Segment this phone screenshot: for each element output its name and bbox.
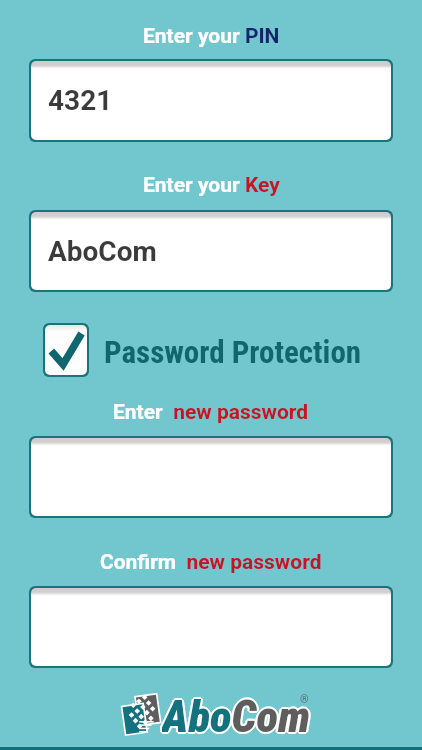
staticText: 4321 — [48, 84, 113, 117]
staticText: AboCom — [161, 691, 310, 737]
staticText: AboCom — [160, 690, 309, 736]
staticText: AboCom — [163, 690, 312, 736]
staticText: AboCom — [162, 690, 311, 736]
staticText: ® — [300, 693, 309, 706]
staticText: AboCom — [162, 691, 311, 737]
button[interactable]: Password Protection — [43, 323, 362, 377]
staticText: AboCom — [162, 692, 311, 738]
button[interactable]: 4321 — [31, 61, 391, 140]
button[interactable]: AboCom — [120, 691, 310, 737]
staticText: AboCom — [163, 691, 312, 737]
staticText: Enter your PIN — [143, 24, 280, 49]
staticText: Confirm new password — [100, 550, 322, 575]
staticText: Enter your Key — [143, 173, 280, 198]
button[interactable]: AboCom — [31, 212, 391, 290]
staticText: Password Protection — [104, 334, 362, 370]
staticText: AboCom — [164, 690, 313, 736]
staticText: AboCom — [162, 688, 311, 734]
button[interactable] — [31, 438, 391, 516]
staticText: AboCom — [163, 689, 312, 735]
staticText: AboCom — [48, 235, 157, 268]
staticText: AboCom — [162, 689, 311, 735]
staticText: Enter new password — [113, 400, 309, 425]
staticText: AboCom — [161, 689, 310, 735]
button[interactable] — [31, 588, 391, 666]
staticText: AboCom — [162, 690, 311, 736]
staticText: AboCom — [161, 690, 310, 736]
